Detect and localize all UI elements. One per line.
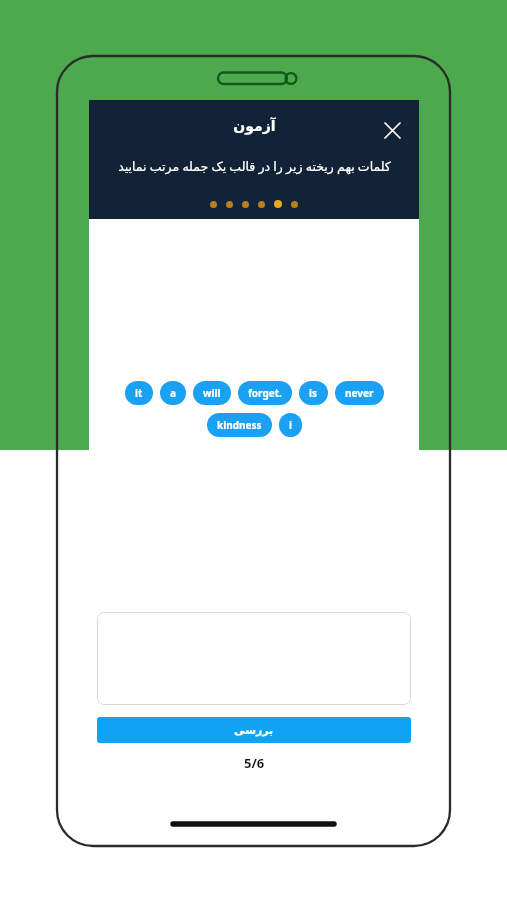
button[interactable]: never: [335, 381, 384, 405]
staticText: it: [135, 386, 143, 400]
button[interactable]: بررسی: [97, 717, 411, 743]
button[interactable]: forget.: [238, 381, 292, 405]
staticText: 5/6: [244, 754, 265, 772]
staticText: will: [203, 386, 221, 400]
button[interactable]: will: [193, 381, 231, 405]
button[interactable]: kindness: [207, 413, 272, 437]
button[interactable]: Close: [377, 115, 407, 145]
staticText: آزمون: [233, 118, 276, 134]
button[interactable]: is: [299, 381, 328, 405]
staticText: kindness: [217, 418, 262, 432]
staticText: کلمات بهم ریخته زیر را در قالب یک جمله م…: [118, 158, 391, 175]
staticText: never: [345, 386, 374, 400]
staticText: i: [289, 418, 292, 432]
staticText: forget.: [248, 386, 282, 400]
staticText: بررسی: [234, 724, 274, 737]
staticText: a: [170, 386, 176, 400]
button[interactable]: i: [279, 413, 302, 437]
button[interactable]: a: [160, 381, 186, 405]
staticText: is: [309, 386, 318, 400]
button[interactable]: [97, 612, 411, 705]
button[interactable]: it: [125, 381, 153, 405]
